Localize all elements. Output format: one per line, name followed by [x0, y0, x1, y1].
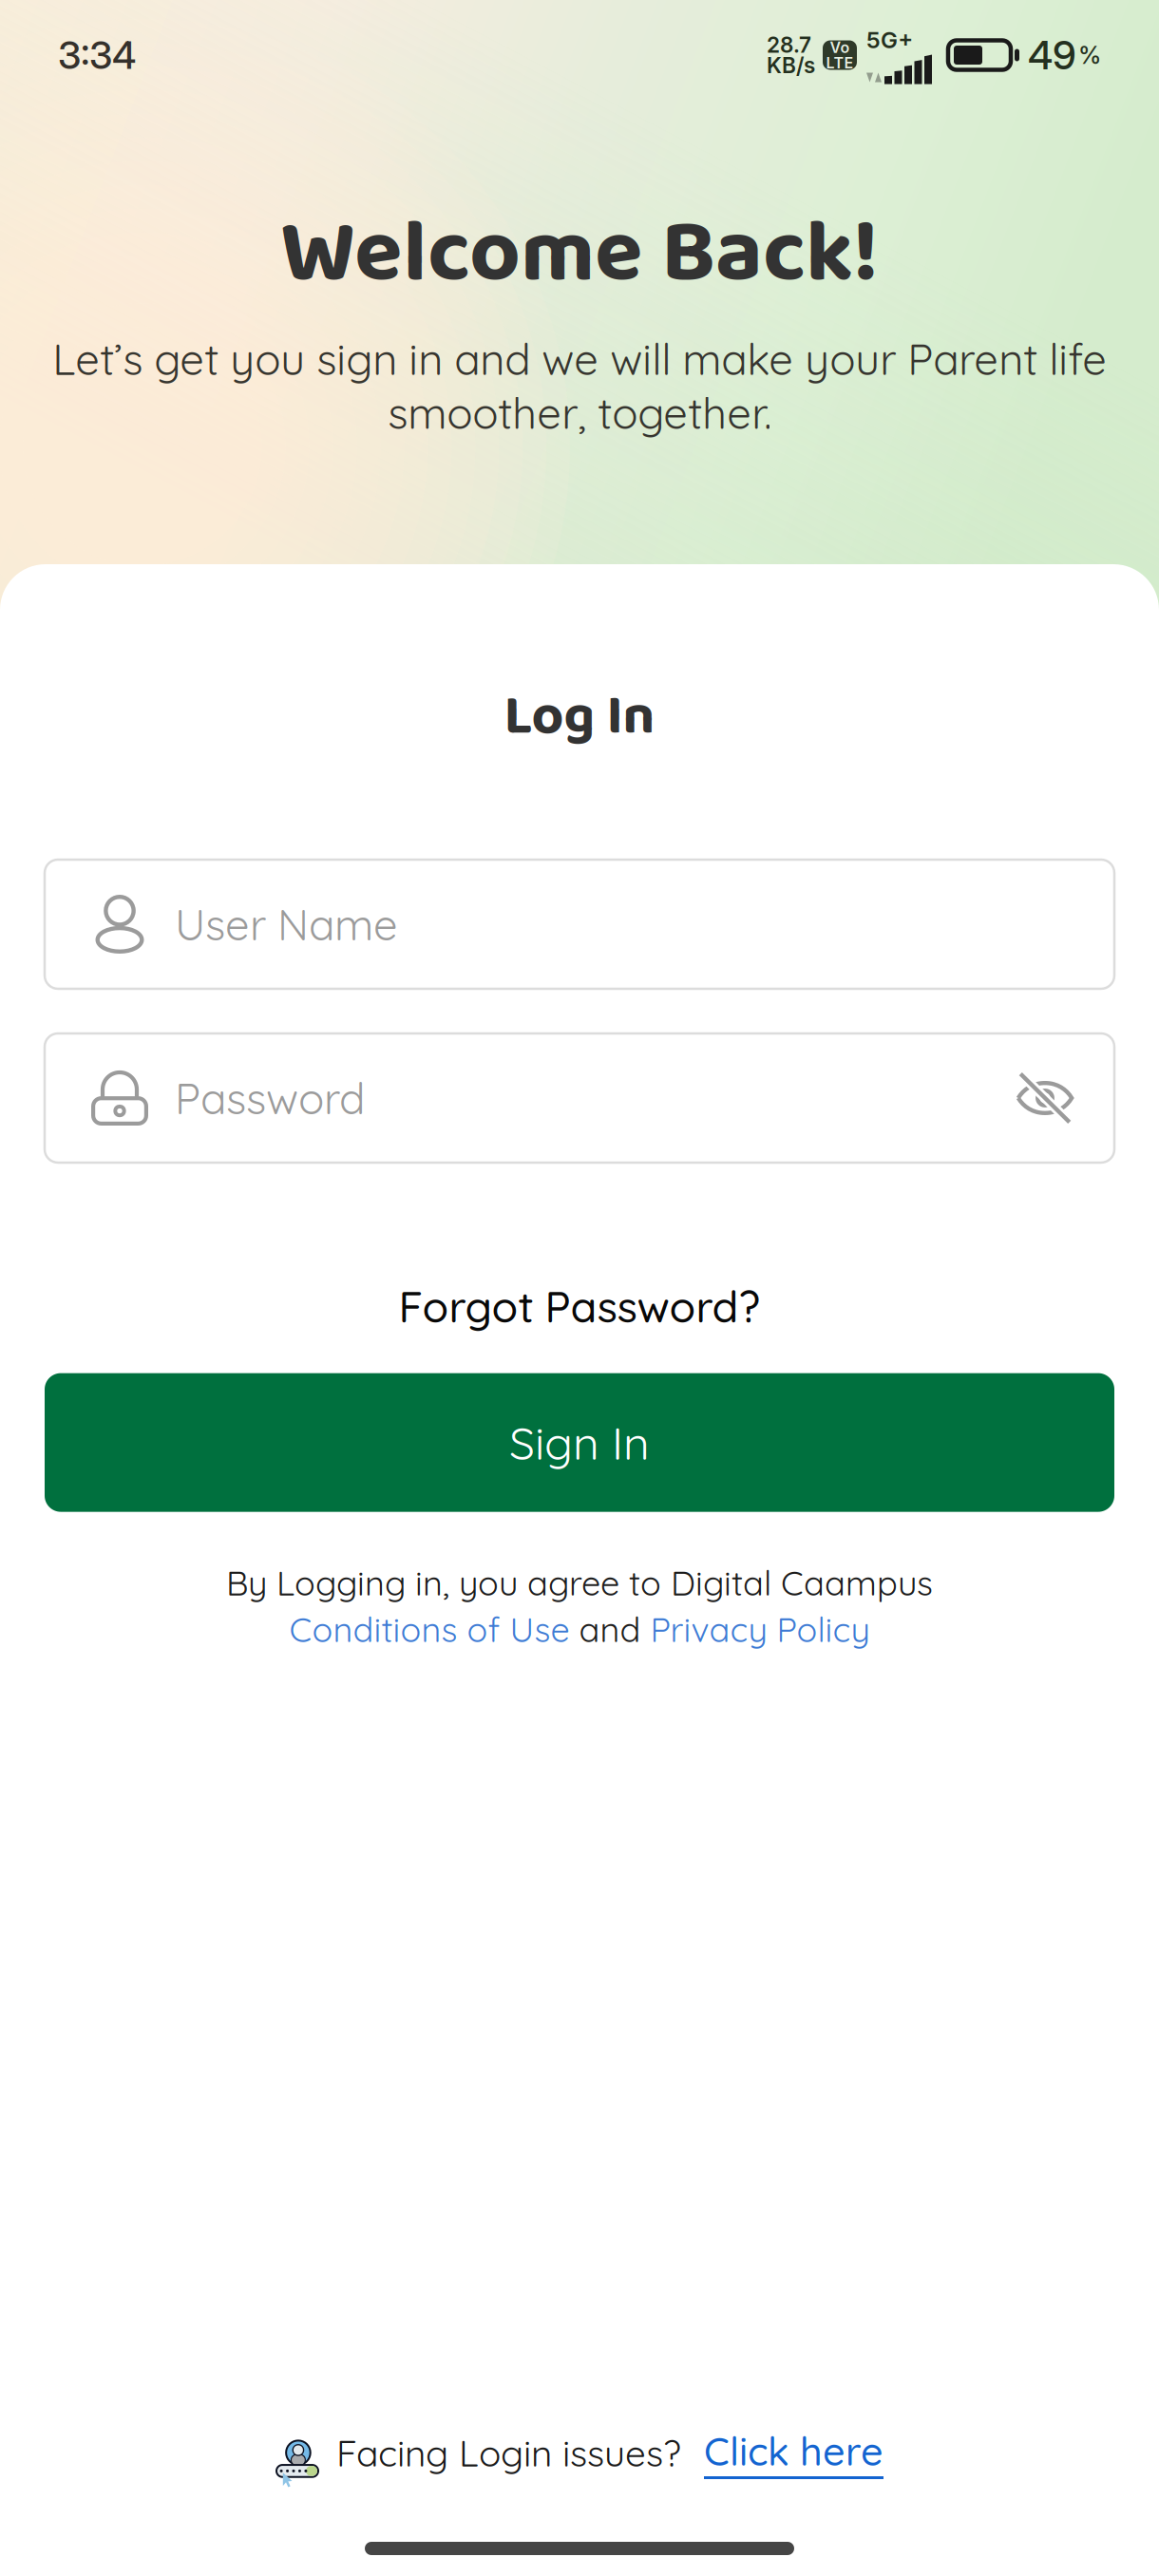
- staticText: Facing Login issues?: [336, 2430, 681, 2476]
- button[interactable]: Privacy Policy: [650, 1608, 870, 1651]
- staticText: 49: [1028, 31, 1076, 79]
- staticText: Vo: [830, 38, 850, 57]
- staticText: and: [570, 1608, 650, 1651]
- button[interactable]: Password: [45, 1033, 1114, 1163]
- staticText: KB/s: [767, 52, 815, 78]
- button[interactable]: Forgot Password?: [399, 1279, 760, 1333]
- staticText: Forgot Password?: [399, 1279, 760, 1333]
- staticText: LTE: [826, 54, 854, 72]
- staticText: Sign In: [509, 1414, 650, 1471]
- staticText: 3:34: [58, 32, 136, 78]
- button[interactable]: User Name: [45, 860, 1114, 989]
- staticText: 28.7: [767, 32, 811, 58]
- button[interactable]: Sign In: [45, 1373, 1114, 1512]
- staticText: Let’s get you sign in and we will make y…: [52, 332, 1107, 440]
- staticText: Conditions of Use: [289, 1608, 570, 1651]
- button[interactable]: Conditions of Use: [289, 1608, 570, 1651]
- staticText: %: [1078, 41, 1101, 70]
- staticText: 5G+: [866, 26, 913, 54]
- staticText: Click here: [704, 2426, 883, 2475]
- staticText: User Name: [175, 897, 398, 951]
- staticText: Welcome Back!: [280, 183, 879, 325]
- staticText: By Logging in, you agree to Digital Caam…: [226, 1561, 933, 1604]
- staticText: Log In: [504, 672, 655, 762]
- staticText: Privacy Policy: [650, 1608, 870, 1651]
- staticText: Password: [175, 1071, 365, 1125]
- button[interactable]: Click here: [704, 2426, 883, 2479]
